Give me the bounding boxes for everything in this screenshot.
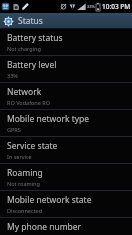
- button[interactable]: Mobile network type: [0, 110, 132, 136]
- button[interactable]: Battery level: [0, 56, 132, 82]
- staticText: Roaming: [7, 167, 43, 179]
- button[interactable]: Battery status: [0, 29, 132, 55]
- button[interactable]: My phone number: [0, 218, 132, 235]
- staticText: Service state: [7, 140, 58, 152]
- button[interactable]: Service state: [0, 137, 132, 163]
- staticText: In service: [7, 153, 32, 160]
- staticText: Network: [7, 86, 42, 98]
- staticText: GPRS: [7, 126, 21, 133]
- staticText: Mobile network type: [7, 113, 90, 125]
- staticText: Disconnected: [7, 207, 43, 214]
- staticText: 33%: [7, 72, 18, 79]
- button[interactable]: Network: [0, 83, 132, 109]
- staticText: Battery level: [7, 59, 57, 71]
- staticText: RO Vodafone RO: [7, 99, 50, 106]
- button[interactable]: Mobile network state: [0, 191, 132, 217]
- staticText: 33%: [87, 4, 95, 9]
- staticText: Battery status: [7, 32, 63, 44]
- staticText: Mobile network state: [7, 194, 92, 206]
- staticText: Not roaming: [7, 180, 40, 187]
- staticText: Not charging: [7, 45, 41, 52]
- button[interactable]: Roaming: [0, 164, 132, 190]
- staticText: Status: [18, 15, 43, 27]
- staticText: 10:03 PM: [102, 2, 131, 11]
- button[interactable]: Status: [0, 13, 132, 28]
- staticText: My phone number: [7, 221, 82, 233]
